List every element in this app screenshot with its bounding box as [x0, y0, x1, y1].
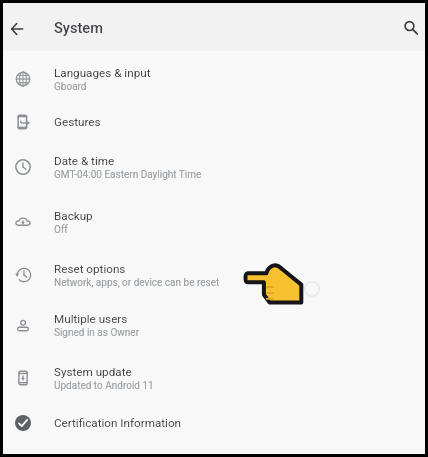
staticText: GMT-04:00 Eastern Daylight Time	[54, 169, 202, 181]
staticText: Updated to Android 11	[54, 380, 154, 392]
staticText: Gboard	[54, 81, 87, 93]
staticText: Off	[54, 224, 68, 236]
staticText: System update	[54, 365, 132, 379]
button[interactable]: Back	[1, 9, 33, 49]
staticText: Network, apps, or device can be reset	[54, 277, 220, 289]
staticText: Multiple users	[54, 312, 128, 326]
button[interactable]: Backup	[3, 202, 425, 242]
button[interactable]: Date & time	[3, 147, 425, 187]
button[interactable]: Gestures	[3, 105, 425, 139]
button[interactable]: Multiple users	[3, 305, 425, 345]
button[interactable]: Certification Information	[3, 406, 425, 440]
staticText: Certification Information	[54, 416, 182, 430]
button[interactable]: System update	[3, 358, 425, 398]
button[interactable]: Reset options	[3, 255, 425, 295]
staticText: Reset options	[54, 262, 126, 276]
staticText: Languages & input	[54, 66, 151, 80]
button[interactable]: Search	[393, 8, 428, 48]
staticText: Signed in as Owner	[54, 327, 140, 339]
staticText: System	[54, 19, 103, 36]
button[interactable]: Languages & input	[3, 59, 425, 99]
staticText: Gestures	[54, 115, 101, 129]
staticText: Date & time	[54, 154, 115, 168]
staticText: Backup	[54, 209, 93, 223]
